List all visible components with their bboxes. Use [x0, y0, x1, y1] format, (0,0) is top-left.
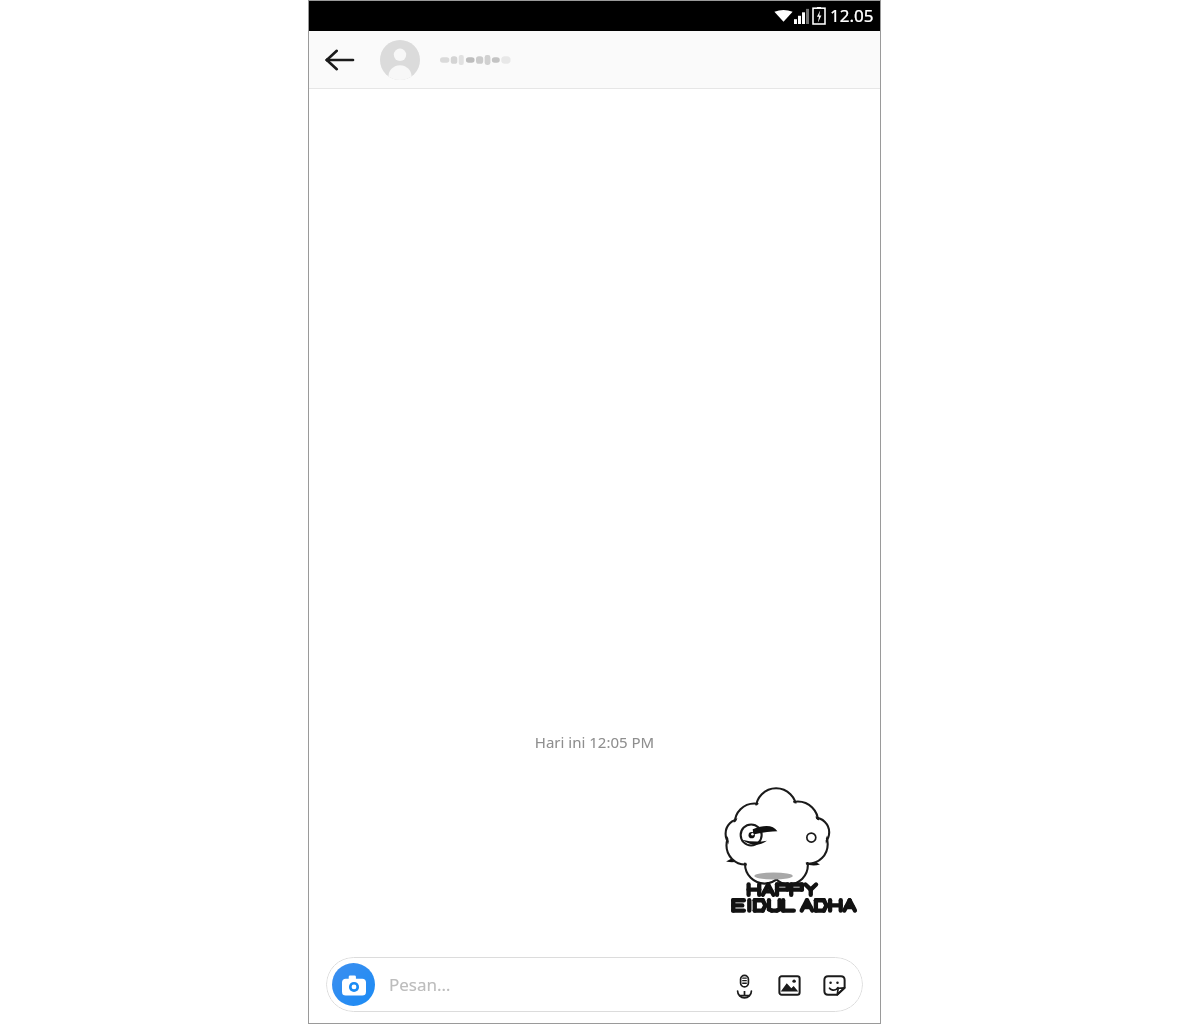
staticText: 12.05 — [830, 4, 874, 27]
staticText: Hari ini 12:05 PM — [308, 732, 881, 752]
staticText: Pesan… — [389, 973, 725, 996]
button[interactable]: Voice message — [725, 966, 763, 1004]
button[interactable]: Camera — [326, 957, 863, 1012]
button[interactable]: Camera — [332, 963, 375, 1006]
button[interactable]: Gallery — [770, 966, 808, 1004]
button[interactable]: Happy Eidul Adha sticker — [707, 798, 835, 930]
button[interactable]: Back — [316, 37, 362, 83]
button[interactable] — [380, 31, 881, 88]
button[interactable]: Stickers — [815, 966, 853, 1004]
